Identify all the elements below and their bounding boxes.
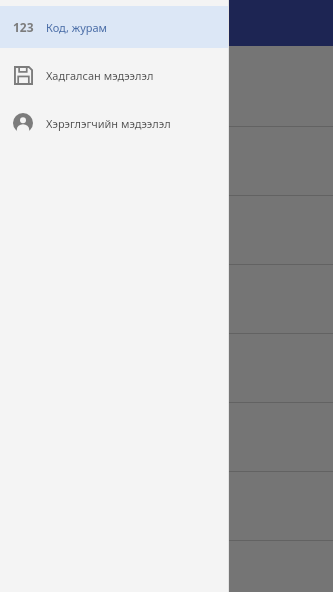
button[interactable]: User information: [0, 102, 229, 144]
button[interactable]: Мэдээлэл жагсаалт 1: [0, 58, 333, 126]
button[interactable]: Мэдээлэл жагсаалт 4: [0, 265, 333, 333]
other: User information: [13, 113, 33, 133]
button[interactable]: Мэдээлэл жагсаалт 3: [0, 196, 333, 264]
button[interactable]: Мэдээлэл жагсаалт 5: [0, 334, 333, 402]
staticText: Хэрэглэгчийн мэдээлэл: [46, 116, 171, 131]
button[interactable]: Мэдээлэл жагсаалт 6: [0, 403, 333, 471]
staticText: Код, журам: [46, 20, 107, 35]
staticText: Мэдээлэл жагсаалт 1: [16, 83, 148, 101]
button[interactable]: Мэдээлэл жагсаалт 7: [0, 472, 333, 540]
button[interactable]: Code and rules: [0, 6, 229, 48]
button[interactable]: Мэдээлэл жагсаалт 8: [0, 541, 333, 592]
button[interactable]: Saved information: [0, 54, 229, 96]
staticText: Хадгалсан мэдээлэл: [46, 68, 154, 83]
other: Saved information: [14, 66, 33, 85]
staticText: 123: [13, 19, 34, 35]
button[interactable]: Мэдээлэл жагсаалт 2: [0, 127, 333, 195]
